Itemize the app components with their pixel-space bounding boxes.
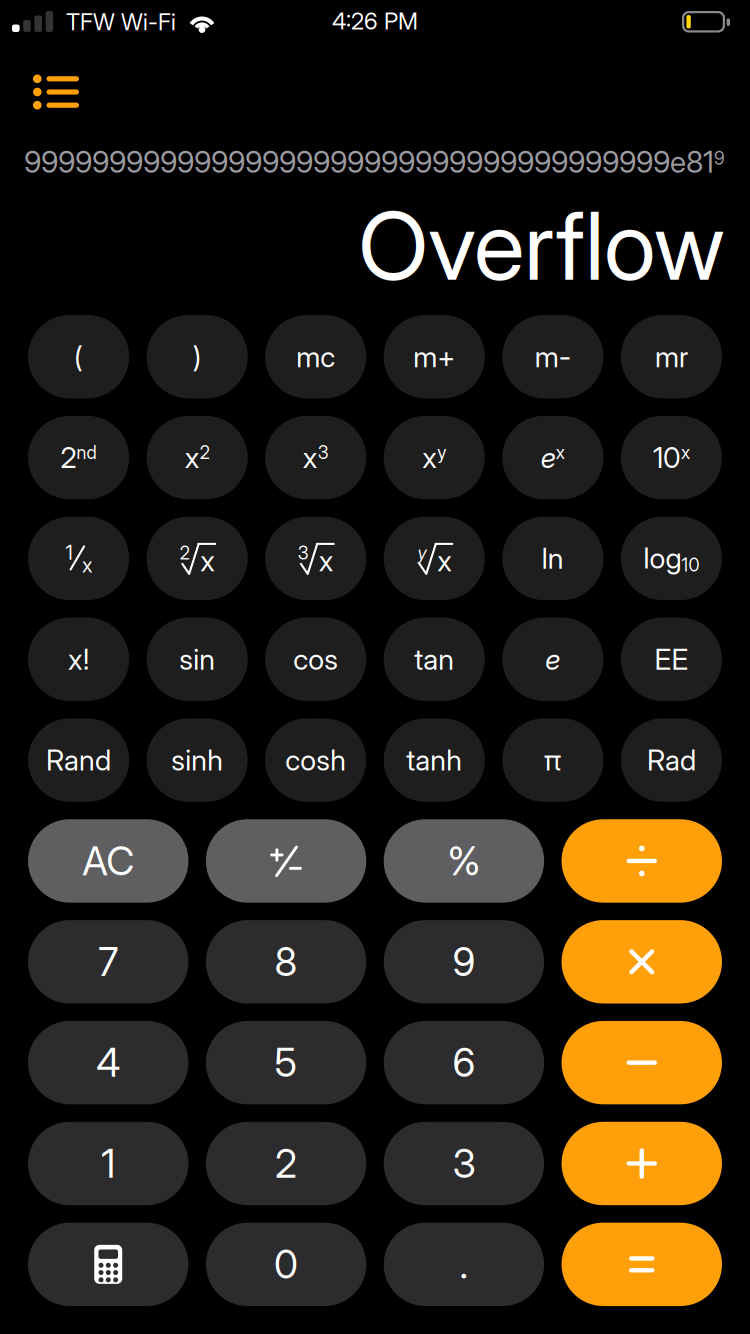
staticText: 0: [274, 1241, 298, 1288]
staticText: 3: [298, 542, 309, 564]
staticText: 2nd: [61, 441, 97, 474]
staticText: sinh: [171, 743, 223, 777]
button[interactable]: EE: [621, 617, 722, 701]
button[interactable]: x2: [147, 416, 248, 499]
staticText: 7: [98, 938, 118, 985]
staticText: 3: [452, 1140, 475, 1187]
button[interactable]: tanh: [384, 718, 485, 802]
button[interactable]: AC: [28, 819, 188, 903]
staticText: cos: [293, 642, 338, 677]
button[interactable]: 4: [28, 1021, 188, 1104]
button[interactable]: 2: [206, 1122, 366, 1205]
staticText: Rad: [647, 743, 696, 777]
button[interactable]: [206, 819, 366, 903]
button[interactable]: 0: [206, 1223, 366, 1306]
staticText: (: [74, 339, 83, 374]
staticText: sin: [179, 642, 215, 677]
button[interactable]: 9: [384, 920, 544, 1003]
button[interactable]: .: [384, 1223, 544, 1306]
button[interactable]: 3: [384, 1122, 544, 1205]
staticText: x2: [185, 441, 210, 474]
button[interactable]: %: [384, 819, 544, 903]
button[interactable]: 6: [384, 1021, 544, 1104]
button[interactable]: 1: [28, 1122, 188, 1205]
button[interactable]: sinh: [147, 718, 248, 802]
button[interactable]: [561, 1122, 722, 1205]
staticText: m+: [413, 339, 455, 374]
button[interactable]: log10: [621, 517, 722, 600]
staticText: y: [417, 542, 426, 564]
button[interactable]: mc: [265, 315, 366, 398]
button[interactable]: History: [17, 58, 95, 125]
staticText: 9: [452, 938, 475, 985]
staticText: Rand: [46, 743, 111, 777]
staticText: x: [319, 544, 334, 578]
staticText: log10: [643, 541, 699, 576]
staticText: 2: [275, 1140, 297, 1187]
button[interactable]: [561, 1223, 722, 1306]
button[interactable]: sin: [147, 617, 248, 701]
button[interactable]: [561, 920, 722, 1003]
staticText: tanh: [406, 743, 462, 777]
button[interactable]: xy: [384, 416, 485, 499]
button[interactable]: ex: [502, 416, 603, 499]
button[interactable]: Rand: [28, 718, 129, 802]
button[interactable]: 2nd: [28, 416, 129, 499]
staticText: %: [447, 837, 480, 885]
button[interactable]: 10x: [621, 416, 722, 499]
button[interactable]: cosh: [265, 718, 366, 802]
staticText: xy: [422, 441, 446, 474]
staticText: x: [437, 544, 452, 578]
staticText: tan: [414, 642, 454, 677]
button[interactable]: tan: [384, 617, 485, 701]
staticText: 10x: [653, 441, 690, 474]
button[interactable]: (: [28, 315, 129, 398]
button[interactable]: 8: [206, 920, 366, 1003]
staticText: mc: [296, 339, 335, 374]
button[interactable]: y: [384, 517, 485, 600]
button[interactable]: m+: [384, 315, 485, 398]
button[interactable]: m-: [502, 315, 603, 398]
button[interactable]: 7: [28, 920, 188, 1003]
staticText: 1: [66, 540, 73, 564]
staticText: mr: [655, 339, 688, 374]
staticText: 8: [275, 938, 298, 985]
staticText: ): [193, 339, 202, 374]
staticText: 1: [101, 1140, 115, 1187]
button[interactable]: ln: [502, 517, 603, 600]
staticText: ln: [542, 541, 564, 576]
staticText: e: [545, 642, 560, 677]
staticText: AC: [82, 837, 134, 885]
button[interactable]: e: [502, 617, 603, 701]
staticText: x: [82, 552, 92, 577]
staticText: 99999999999999999999999999999999999999e8…: [24, 144, 725, 180]
button[interactable]: ): [147, 315, 248, 398]
staticText: cosh: [285, 743, 346, 777]
button[interactable]: 3: [265, 517, 366, 600]
staticText: 4:26 PM: [332, 7, 418, 35]
staticText: EE: [654, 642, 688, 677]
button[interactable]: [561, 1021, 722, 1104]
button[interactable]: x!: [28, 617, 129, 701]
staticText: 6: [452, 1039, 475, 1086]
staticText: x3: [303, 441, 329, 474]
button[interactable]: 2: [147, 517, 248, 600]
button[interactable]: π: [502, 718, 603, 802]
button[interactable]: Rad: [621, 718, 722, 802]
button[interactable]: mr: [621, 315, 722, 398]
button[interactable]: [561, 819, 722, 903]
staticText: x: [200, 544, 215, 578]
staticText: 5: [275, 1039, 298, 1086]
staticText: TFW Wi-Fi: [66, 8, 176, 36]
staticText: ex: [541, 441, 565, 474]
staticText: m-: [535, 339, 571, 374]
button[interactable]: 5: [206, 1021, 366, 1104]
staticText: π: [544, 743, 562, 777]
staticText: Overflow: [358, 189, 725, 302]
button[interactable]: [28, 1223, 188, 1306]
button[interactable]: x3: [265, 416, 366, 499]
button[interactable]: 1: [28, 517, 129, 600]
staticText: .: [459, 1241, 468, 1288]
staticText: 2: [180, 542, 190, 564]
button[interactable]: cos: [265, 617, 366, 701]
